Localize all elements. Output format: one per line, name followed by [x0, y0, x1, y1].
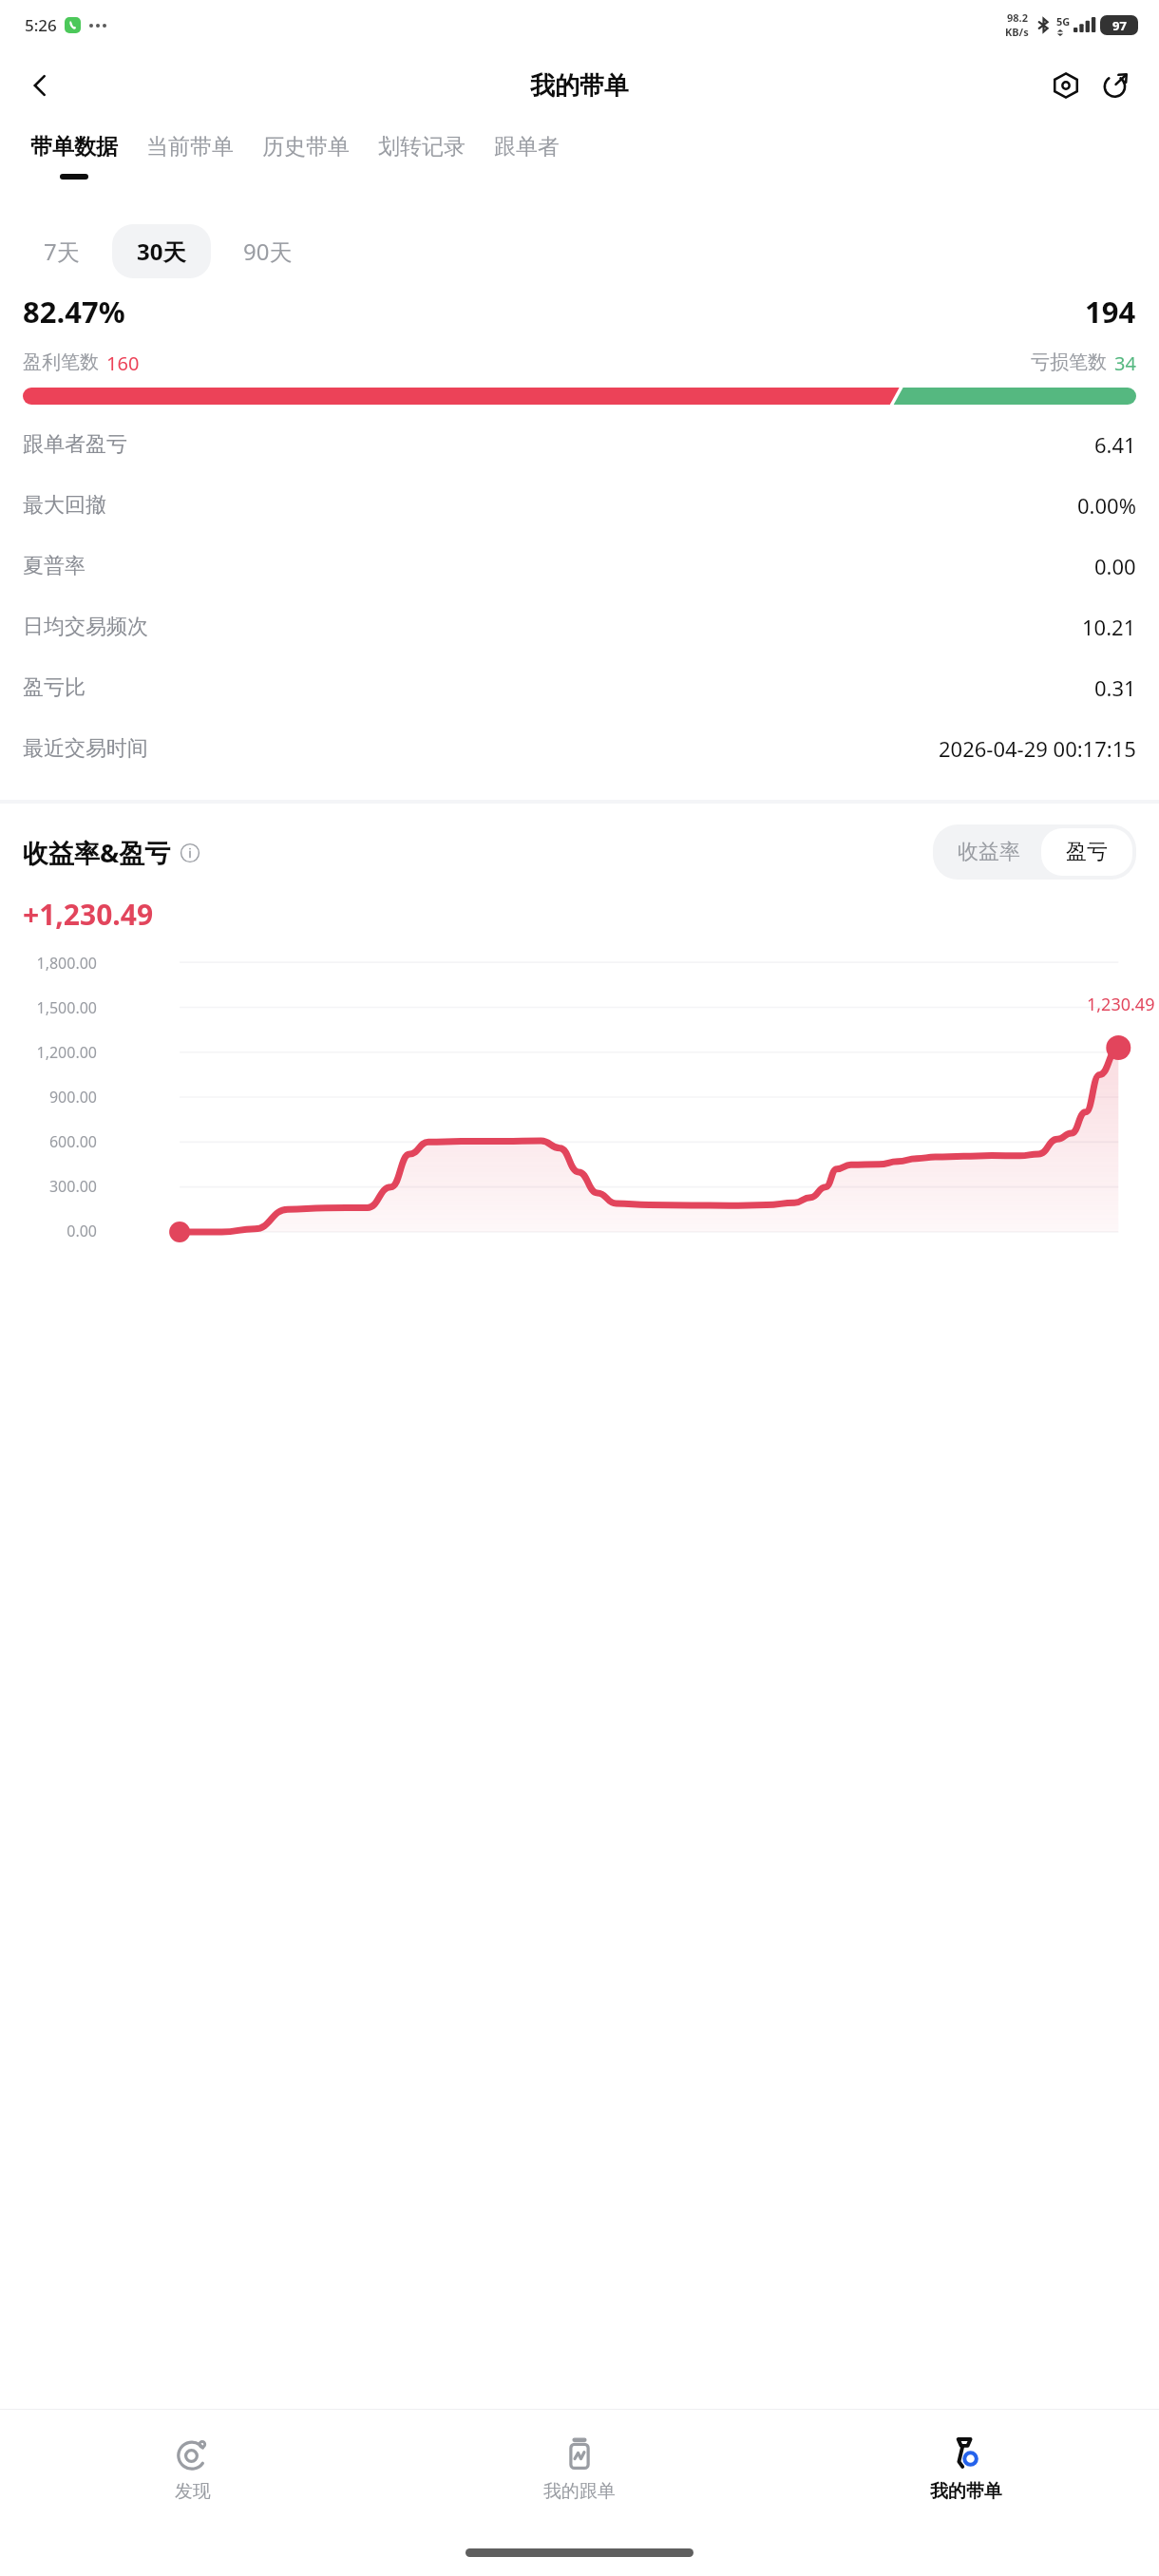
staticText: 300.00	[0, 1176, 97, 1197]
button[interactable]: 我的带单	[772, 2410, 1159, 2529]
button[interactable]: Info	[179, 842, 201, 864]
staticText: 5:26	[25, 14, 57, 36]
staticText: 1,500.00	[0, 997, 97, 1018]
staticText: 我的带单	[930, 2480, 1002, 2503]
button[interactable]: 夏普率	[0, 536, 1159, 597]
staticText: 跟单者盈亏	[23, 431, 127, 458]
staticText: 900.00	[0, 1087, 97, 1108]
staticText: 1,200.00	[0, 1042, 97, 1063]
staticText: 划转记录	[378, 133, 465, 161]
staticText: 收益率&盈亏	[23, 835, 171, 870]
staticText: 5G	[1056, 14, 1071, 28]
staticText: 0.00	[1094, 552, 1136, 580]
staticText: 1,800.00	[0, 953, 97, 974]
staticText: 90天	[243, 236, 293, 267]
staticText: 34	[1114, 350, 1136, 376]
staticText: 盈亏	[1066, 839, 1108, 865]
button[interactable]: 收益率	[937, 828, 1041, 876]
staticText: 0.00	[0, 1221, 97, 1241]
staticText: 7天	[44, 236, 80, 267]
staticText: 我的带单	[530, 70, 629, 102]
button[interactable]: 30天	[112, 224, 211, 278]
staticText: 收益率	[958, 839, 1020, 865]
button[interactable]: 当前带单	[139, 122, 241, 174]
staticText: 97	[1112, 17, 1127, 34]
button[interactable]: Back	[13, 59, 66, 112]
staticText: 0.31	[1094, 673, 1136, 702]
staticText: 10.21	[1082, 613, 1136, 641]
button[interactable]: 日均交易频次	[0, 597, 1159, 657]
button[interactable]: 7天	[19, 224, 104, 278]
button[interactable]: Settings	[1041, 61, 1091, 110]
staticText: 我的跟单	[543, 2480, 616, 2503]
staticText: 盈亏比	[23, 674, 85, 701]
staticText: 1,230.49	[1087, 993, 1155, 1016]
button[interactable]: 带单数据	[23, 122, 125, 180]
staticText: 194	[1085, 292, 1136, 331]
button[interactable]: Share	[1091, 61, 1140, 110]
button[interactable]: 盈亏	[1041, 828, 1132, 876]
staticText: 600.00	[0, 1131, 97, 1152]
button[interactable]: 90天	[218, 224, 317, 278]
button[interactable]: 盈亏比	[0, 657, 1159, 718]
staticText: 最大回撤	[23, 492, 106, 519]
staticText: 带单数据	[30, 133, 118, 161]
staticText: 历史带单	[262, 133, 350, 161]
button[interactable]: 最大回撤	[0, 475, 1159, 536]
button[interactable]: 发现	[0, 2410, 386, 2529]
staticText: 160	[106, 350, 140, 376]
staticText: 跟单者	[494, 133, 560, 161]
staticText: +1,230.49	[23, 895, 154, 934]
staticText: 0.00%	[1077, 491, 1136, 520]
staticText: 盈利笔数	[23, 350, 99, 374]
staticText: 亏损笔数	[1031, 350, 1107, 374]
staticText: 当前带单	[146, 133, 234, 161]
staticText: 夏普率	[23, 553, 85, 579]
staticText: 30天	[137, 236, 186, 267]
staticText: 日均交易频次	[23, 614, 148, 640]
staticText: 最近交易时间	[23, 735, 148, 762]
staticText: 发现	[175, 2480, 211, 2503]
staticText: KB/s	[1005, 25, 1029, 39]
button[interactable]: 最近交易时间	[0, 718, 1159, 779]
button[interactable]: 跟单者	[486, 122, 567, 174]
button[interactable]: 历史带单	[255, 122, 357, 174]
staticText: 82.47%	[23, 292, 125, 331]
staticText: 6.41	[1094, 430, 1136, 459]
staticText: 98.2	[1007, 10, 1028, 25]
staticText: 2026-04-29 00:17:15	[939, 734, 1136, 763]
button[interactable]: 划转记录	[370, 122, 473, 174]
button[interactable]: 跟单者盈亏	[0, 414, 1159, 475]
button[interactable]: 我的跟单	[386, 2410, 772, 2529]
